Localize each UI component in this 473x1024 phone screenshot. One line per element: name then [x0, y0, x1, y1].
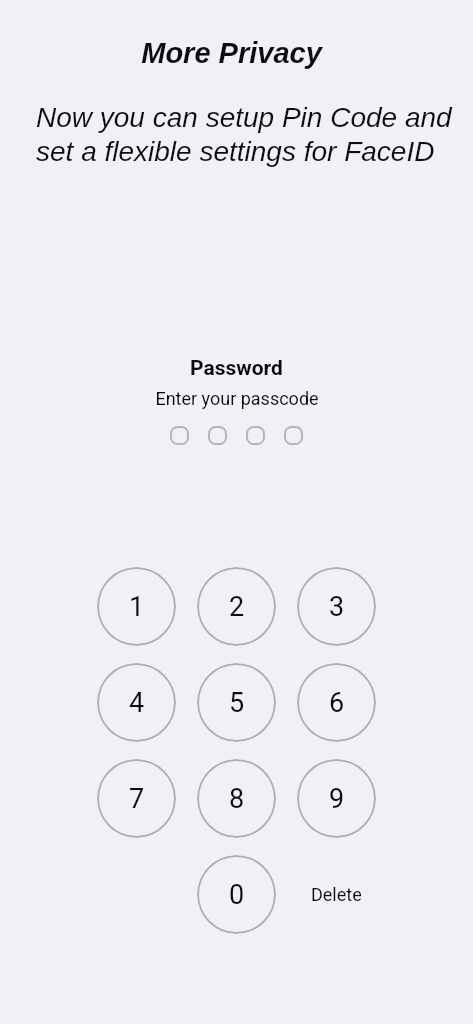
- staticText: 9: [329, 783, 345, 815]
- button[interactable]: 1: [97, 567, 176, 646]
- button[interactable]: 5: [197, 663, 276, 742]
- button[interactable]: 0: [197, 855, 276, 934]
- staticText: 8: [229, 783, 245, 815]
- staticText: 6: [329, 687, 345, 719]
- button[interactable]: 3: [297, 567, 376, 646]
- button[interactable]: 6: [297, 663, 376, 742]
- button[interactable]: Delete: [297, 855, 376, 934]
- button[interactable]: 7: [97, 759, 176, 838]
- staticText: 4: [129, 687, 145, 719]
- button[interactable]: 8: [197, 759, 276, 838]
- staticText: 1: [129, 591, 145, 623]
- staticText: 0: [229, 879, 245, 911]
- staticText: 5: [229, 687, 245, 719]
- staticText: Now you can setup Pin Code and set a fle…: [36, 102, 452, 167]
- staticText: Password: [190, 356, 283, 381]
- button[interactable]: 4: [97, 663, 176, 742]
- staticText: 7: [129, 783, 145, 815]
- staticText: More Privacy: [141, 37, 322, 69]
- staticText: 3: [329, 591, 345, 623]
- button[interactable]: 9: [297, 759, 376, 838]
- staticText: 2: [229, 591, 245, 623]
- staticText: Enter your passcode: [155, 388, 319, 409]
- staticText: Delete: [311, 884, 362, 905]
- button[interactable]: 2: [197, 567, 276, 646]
